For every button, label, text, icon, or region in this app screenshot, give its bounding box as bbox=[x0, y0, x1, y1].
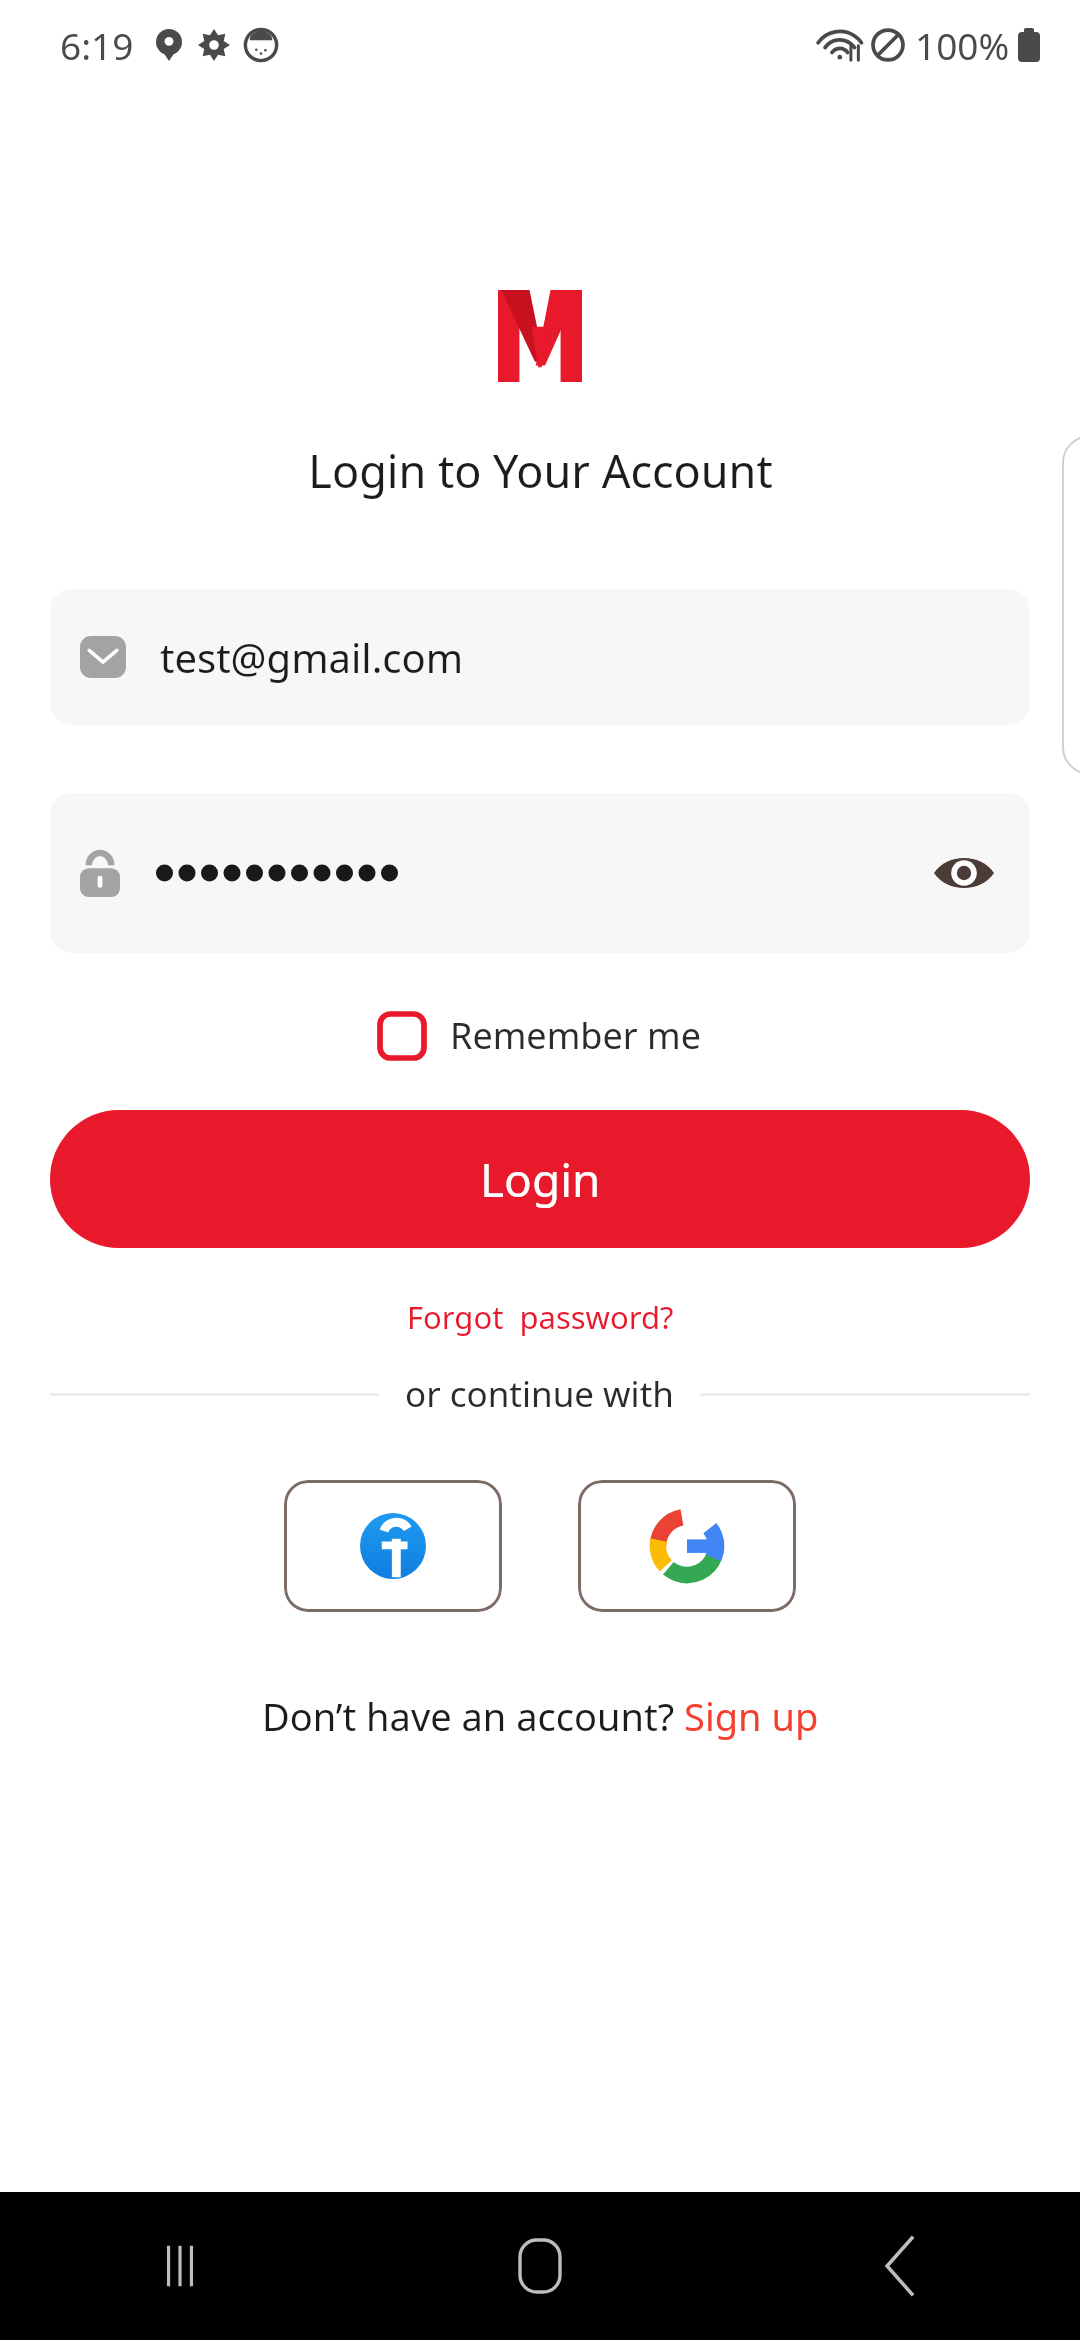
button[interactable]: Login bbox=[50, 1110, 1030, 1248]
staticText: test@gmail.com bbox=[160, 630, 464, 684]
staticText: Don’t have an account? Sign up bbox=[262, 1690, 819, 1742]
staticText: Forgot password? bbox=[407, 1296, 674, 1338]
staticText: 100% bbox=[915, 20, 1010, 70]
button[interactable]: Forgot password? bbox=[387, 1286, 694, 1348]
button[interactable]: Remember me bbox=[368, 1003, 713, 1068]
button[interactable]: test@gmail.com bbox=[50, 589, 1030, 725]
button[interactable]: Show password bbox=[50, 793, 1030, 953]
button[interactable]: Show password bbox=[928, 837, 1000, 909]
button[interactable]: Sign in with Facebook bbox=[284, 1480, 502, 1612]
staticText: Login bbox=[480, 1148, 601, 1211]
button[interactable]: Sign in with Google bbox=[578, 1480, 796, 1612]
staticText: Login to Your Account bbox=[308, 440, 773, 501]
button[interactable]: Recents bbox=[0, 2192, 360, 2340]
staticText: or continue with bbox=[405, 1370, 674, 1418]
staticText: Remember me bbox=[450, 1011, 701, 1060]
button[interactable]: Back bbox=[720, 2192, 1080, 2340]
staticText: 6:19 bbox=[60, 20, 134, 70]
button[interactable]: Home bbox=[360, 2192, 720, 2340]
button[interactable]: Don’t have an account? Sign up bbox=[246, 1682, 835, 1750]
